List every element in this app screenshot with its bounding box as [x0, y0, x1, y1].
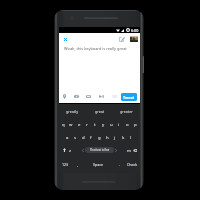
button[interactable]: 123	[59, 158, 72, 170]
staticText: q	[62, 121, 65, 127]
button[interactable]: w	[67, 118, 75, 130]
button[interactable]: y	[99, 118, 107, 130]
staticText: 140	[112, 95, 118, 99]
staticText: Check	[127, 162, 138, 167]
staticText: a	[66, 134, 69, 140]
staticText: y	[102, 121, 105, 127]
button[interactable]: t	[91, 118, 99, 130]
button[interactable]: Tweet	[121, 93, 137, 101]
button[interactable]: Shift	[61, 144, 67, 156]
staticText: w	[69, 121, 73, 127]
button[interactable]: g	[95, 131, 103, 143]
button[interactable]: Backspace	[132, 144, 138, 156]
button[interactable]: Drafts	[118, 35, 126, 43]
button[interactable]: Check	[124, 158, 140, 170]
button[interactable]: greater	[113, 104, 140, 119]
button[interactable]: Space	[82, 158, 114, 170]
button[interactable]: m	[126, 144, 132, 156]
staticText: s	[74, 134, 77, 140]
button[interactable]: great	[86, 104, 113, 119]
staticText: 6:00	[131, 28, 139, 33]
button[interactable]: o	[123, 118, 131, 130]
staticText: Woah, this keyboard is really great	[64, 46, 127, 51]
button[interactable]: Camera	[73, 93, 80, 100]
staticText: h	[106, 134, 109, 140]
button[interactable]: r	[83, 118, 91, 130]
staticText: e	[78, 121, 81, 127]
staticText: r	[86, 121, 88, 127]
staticText: l	[130, 134, 132, 140]
button[interactable]: j	[111, 131, 119, 143]
button[interactable]: l	[127, 131, 135, 143]
button[interactable]: Photo	[85, 93, 92, 100]
button[interactable]: u	[107, 118, 115, 130]
staticText: z	[69, 147, 72, 153]
staticText: g	[98, 134, 101, 140]
button[interactable]: h	[103, 131, 111, 143]
button[interactable]: That test is fine	[85, 147, 114, 153]
staticText: t	[94, 121, 96, 127]
button[interactable]: q	[60, 118, 67, 130]
staticText: u	[110, 121, 113, 127]
button[interactable]: GIF	[98, 93, 105, 100]
button[interactable]: d	[79, 131, 87, 143]
staticText: That test is fine	[90, 148, 110, 152]
button[interactable]: ,	[72, 158, 82, 170]
button[interactable]: Profile	[130, 36, 138, 42]
button[interactable]: Location	[61, 93, 68, 100]
button[interactable]: a	[64, 131, 71, 143]
button[interactable]: s	[71, 131, 79, 143]
staticText: great	[95, 109, 105, 114]
staticText: d	[82, 134, 85, 140]
staticText: i	[118, 121, 120, 127]
button[interactable]: e	[75, 118, 83, 130]
staticText: .	[119, 162, 120, 167]
staticText: o	[126, 121, 129, 127]
button[interactable]: .	[114, 158, 124, 170]
button[interactable]: greatly	[59, 104, 86, 119]
button[interactable]: z	[67, 144, 73, 156]
button[interactable]: i	[115, 118, 123, 130]
staticText: m	[127, 147, 132, 153]
button[interactable]: Close	[61, 35, 69, 43]
staticText: j	[114, 134, 116, 140]
staticText: k	[122, 134, 125, 140]
button[interactable]: f	[87, 131, 95, 143]
button[interactable]: p	[131, 118, 139, 130]
button[interactable]: k	[119, 131, 127, 143]
staticText: greater	[120, 109, 133, 114]
staticText: 123	[62, 162, 69, 167]
staticText: f	[90, 134, 92, 140]
staticText: greatly	[66, 109, 79, 114]
staticText: Space	[93, 162, 103, 167]
staticText: Tweet	[123, 95, 135, 100]
staticText: p	[134, 121, 137, 127]
staticText: ,	[77, 162, 78, 167]
